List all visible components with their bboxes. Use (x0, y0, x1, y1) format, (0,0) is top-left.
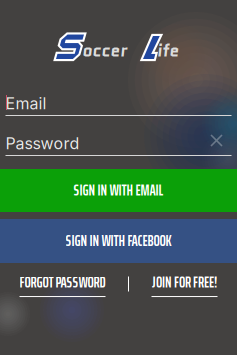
button[interactable]: SIGN IN WITH EMAIL (0, 169, 237, 212)
staticText: JOIN FOR FREE! (152, 271, 217, 294)
button[interactable]: SIGN IN WITH FACEBOOK (0, 219, 237, 263)
button[interactable]: Password (5, 132, 231, 156)
staticText: ife (157, 38, 179, 63)
staticText: FORGOT PASSWORD (19, 271, 105, 294)
staticText: occer (82, 38, 127, 63)
staticText: Email (5, 94, 46, 113)
staticText: Password (5, 134, 79, 153)
staticText: SIGN IN WITH EMAIL (73, 179, 163, 202)
button[interactable]: JOIN FOR FREE! (151, 271, 217, 297)
button[interactable]: FORGOT PASSWORD (19, 271, 105, 297)
staticText: SIGN IN WITH FACEBOOK (65, 229, 171, 253)
button[interactable]: Email (5, 92, 231, 116)
